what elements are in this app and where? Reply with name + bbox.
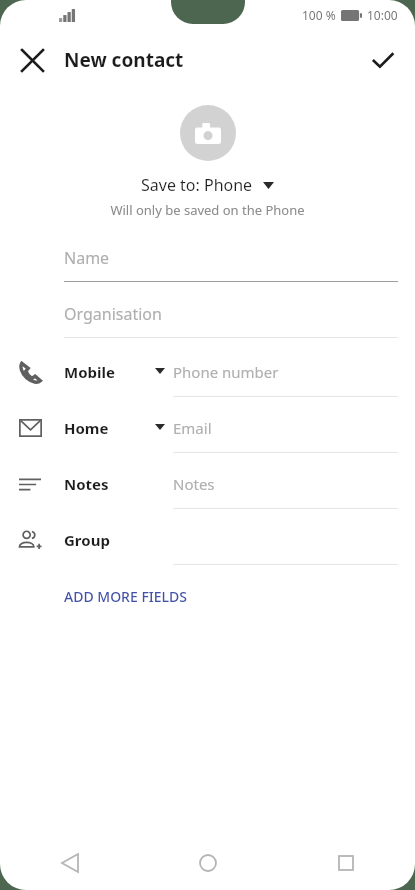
staticText: ADD MORE FIELDS bbox=[64, 587, 187, 606]
button[interactable]: Group bbox=[0, 521, 415, 565]
staticText: Organisation bbox=[64, 303, 162, 325]
staticText: Mobile bbox=[64, 362, 115, 382]
button[interactable]: Notes bbox=[0, 465, 415, 509]
staticText: 10:00 bbox=[367, 7, 398, 23]
button[interactable]: Home bbox=[139, 836, 277, 890]
staticText: Name bbox=[64, 247, 110, 269]
button[interactable]: Recent apps bbox=[277, 836, 415, 890]
staticText: Group bbox=[64, 530, 110, 550]
button[interactable]: Name bbox=[0, 244, 415, 282]
staticText: Notes bbox=[173, 474, 215, 494]
button[interactable]: Close bbox=[8, 36, 56, 84]
staticText: Will only be saved on the Phone bbox=[0, 201, 415, 219]
button[interactable]: Add photo bbox=[180, 105, 236, 161]
button[interactable]: Save contact bbox=[359, 36, 407, 84]
staticText: New contact bbox=[64, 47, 184, 73]
staticText: 100 % bbox=[302, 7, 336, 23]
button[interactable]: Back bbox=[0, 836, 139, 890]
staticText: Phone number bbox=[173, 362, 279, 382]
staticText: Email bbox=[173, 418, 212, 438]
staticText: Notes bbox=[64, 474, 109, 494]
button[interactable]: Mobile bbox=[0, 353, 415, 397]
button[interactable]: Save to: Phone bbox=[141, 174, 274, 196]
staticText: Home bbox=[64, 418, 109, 438]
button[interactable]: ADD MORE FIELDS bbox=[48, 579, 203, 614]
button[interactable]: Organisation bbox=[0, 300, 415, 338]
staticText: Save to: Phone bbox=[141, 174, 253, 196]
button[interactable]: Home bbox=[0, 409, 415, 453]
